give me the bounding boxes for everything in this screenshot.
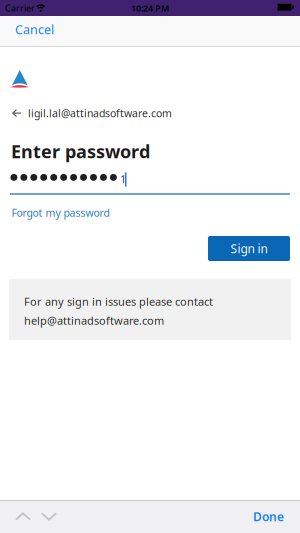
- staticText: Sign in: [230, 240, 267, 257]
- staticText: 10:24 PM: [131, 2, 169, 14]
- staticText: Enter password: [11, 139, 150, 163]
- button[interactable]: ligil.lal@attinadsoftware.com: [12, 106, 172, 120]
- staticText: Forgot my password: [11, 205, 109, 220]
- staticText: For any sign in issues please contact: [24, 294, 213, 309]
- staticText: 1: [120, 173, 126, 186]
- button[interactable]: [41, 512, 57, 520]
- button[interactable]: Sign in: [208, 236, 290, 261]
- button[interactable]: Forgot my password: [11, 205, 109, 220]
- staticText: help@attinadsoftware.com: [24, 313, 164, 328]
- staticText: Carrier: [5, 2, 35, 14]
- button[interactable]: [15, 512, 31, 520]
- staticText: Done: [253, 508, 284, 525]
- staticText: Cancel: [15, 21, 54, 38]
- staticText: ligil.lal@attinadsoftware.com: [28, 106, 172, 120]
- button[interactable]: Cancel: [15, 21, 54, 38]
- button[interactable]: Done: [253, 508, 284, 525]
